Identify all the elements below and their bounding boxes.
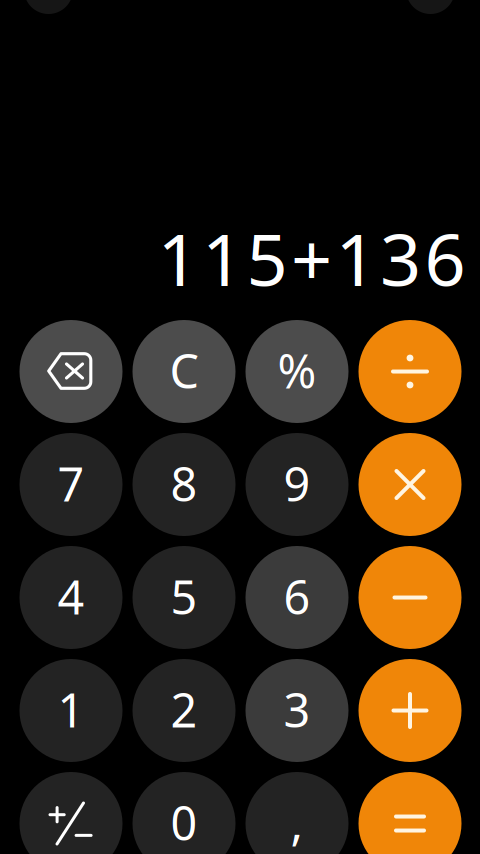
button[interactable]: Add: [358, 659, 461, 762]
staticText: 115+136: [157, 210, 465, 306]
button[interactable]: 9: [245, 433, 348, 536]
button[interactable]: 5: [132, 546, 235, 649]
button[interactable]: 0: [132, 772, 235, 854]
staticText: 6: [283, 565, 310, 627]
button[interactable]: 1: [19, 659, 122, 762]
button[interactable]: Delete: [19, 320, 122, 423]
button[interactable]: 2: [132, 659, 235, 762]
button[interactable]: C: [132, 320, 235, 423]
button[interactable]: 3: [245, 659, 348, 762]
button[interactable]: 7: [19, 433, 122, 536]
staticText: 0: [170, 791, 197, 853]
button[interactable]: Toggle sign: [19, 772, 122, 854]
staticText: 3: [283, 678, 310, 740]
staticText: %: [277, 339, 316, 401]
button[interactable]: Subtract: [358, 546, 461, 649]
button[interactable]: Multiply: [358, 433, 461, 536]
staticText: 9: [283, 452, 310, 514]
staticText: 2: [170, 678, 197, 740]
staticText: 5: [170, 565, 197, 627]
staticText: 7: [57, 452, 84, 514]
button[interactable]: %: [245, 320, 348, 423]
button[interactable]: 8: [132, 433, 235, 536]
staticText: 8: [170, 452, 197, 514]
button[interactable]: 4: [19, 546, 122, 649]
button[interactable]: 6: [245, 546, 348, 649]
staticText: 4: [57, 565, 84, 627]
button[interactable]: Equals: [358, 772, 461, 854]
button[interactable]: Divide: [358, 320, 461, 423]
button[interactable]: ,: [245, 772, 348, 854]
staticText: C: [169, 339, 198, 401]
staticText: ,: [290, 791, 303, 853]
staticText: 1: [57, 678, 84, 740]
